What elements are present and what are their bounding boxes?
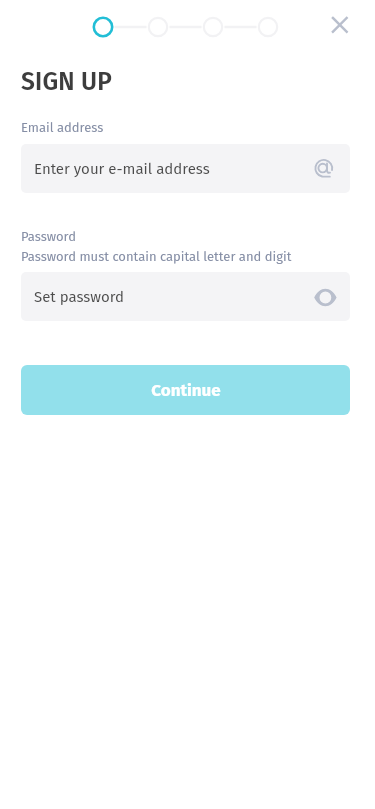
staticText: Email address (21, 120, 104, 136)
button[interactable]: Show password (312, 285, 336, 309)
staticText: Set password (34, 288, 125, 306)
button[interactable]: Enter your e-mail address (21, 144, 350, 193)
staticText: Password must contain capital letter and… (21, 249, 292, 265)
staticText: Continue (151, 380, 221, 400)
staticText: SIGN UP (21, 67, 113, 96)
staticText: Enter your e-mail address (34, 160, 210, 178)
button[interactable]: Close (322, 7, 358, 43)
button[interactable]: Continue (21, 365, 350, 415)
staticText: Password (21, 229, 77, 245)
button[interactable]: Set password (21, 272, 350, 321)
other: Email (312, 157, 336, 181)
